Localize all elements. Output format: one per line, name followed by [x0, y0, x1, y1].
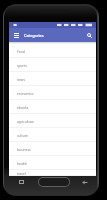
button[interactable]: news [9, 72, 96, 86]
button[interactable]: ebooks [9, 100, 96, 114]
button[interactable]: Open navigation drawer [12, 31, 21, 40]
button[interactable]: Search [84, 30, 94, 40]
button[interactable]: Recent apps [17, 178, 26, 186]
staticText: agriculture [17, 119, 34, 123]
button[interactable]: sports [9, 58, 96, 72]
staticText: Food [17, 49, 25, 53]
button[interactable]: Home [39, 178, 69, 186]
staticText: news [17, 77, 26, 81]
staticText: sports [17, 63, 27, 67]
button[interactable]: culture [9, 128, 96, 142]
button[interactable]: economics [9, 86, 96, 100]
button[interactable]: business [9, 142, 96, 156]
staticText: business [17, 147, 31, 151]
staticText: travel [17, 171, 26, 175]
button[interactable]: Back [80, 178, 90, 186]
staticText: economics [17, 91, 34, 95]
button[interactable]: health [9, 156, 96, 170]
staticText: health [17, 161, 27, 165]
staticText: Categories [24, 33, 44, 38]
button[interactable]: agriculture [9, 114, 96, 128]
staticText: ebooks [17, 105, 29, 109]
staticText: culture [17, 133, 28, 137]
button[interactable]: travel [9, 170, 96, 176]
button[interactable]: Food [9, 44, 96, 58]
